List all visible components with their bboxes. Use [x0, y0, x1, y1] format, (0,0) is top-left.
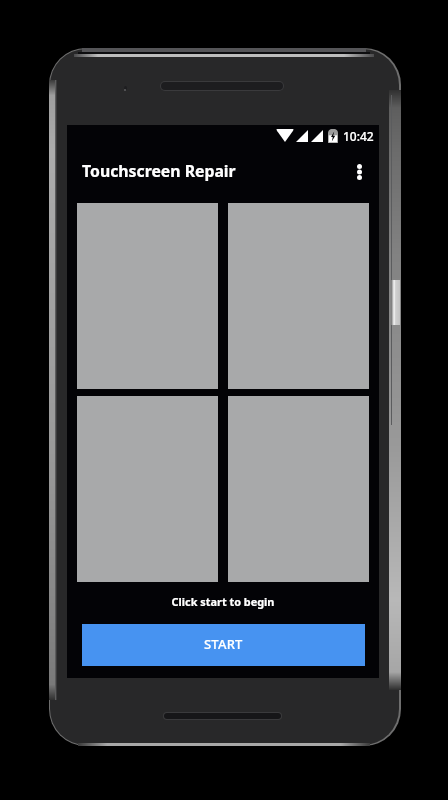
staticText: Click start to begin [67, 594, 379, 609]
button[interactable]: More options [342, 155, 376, 189]
staticText: 10:42 [343, 128, 374, 144]
staticText: START [204, 635, 243, 653]
staticText: Touchscreen Repair [82, 160, 236, 182]
button[interactable]: START [82, 624, 365, 666]
